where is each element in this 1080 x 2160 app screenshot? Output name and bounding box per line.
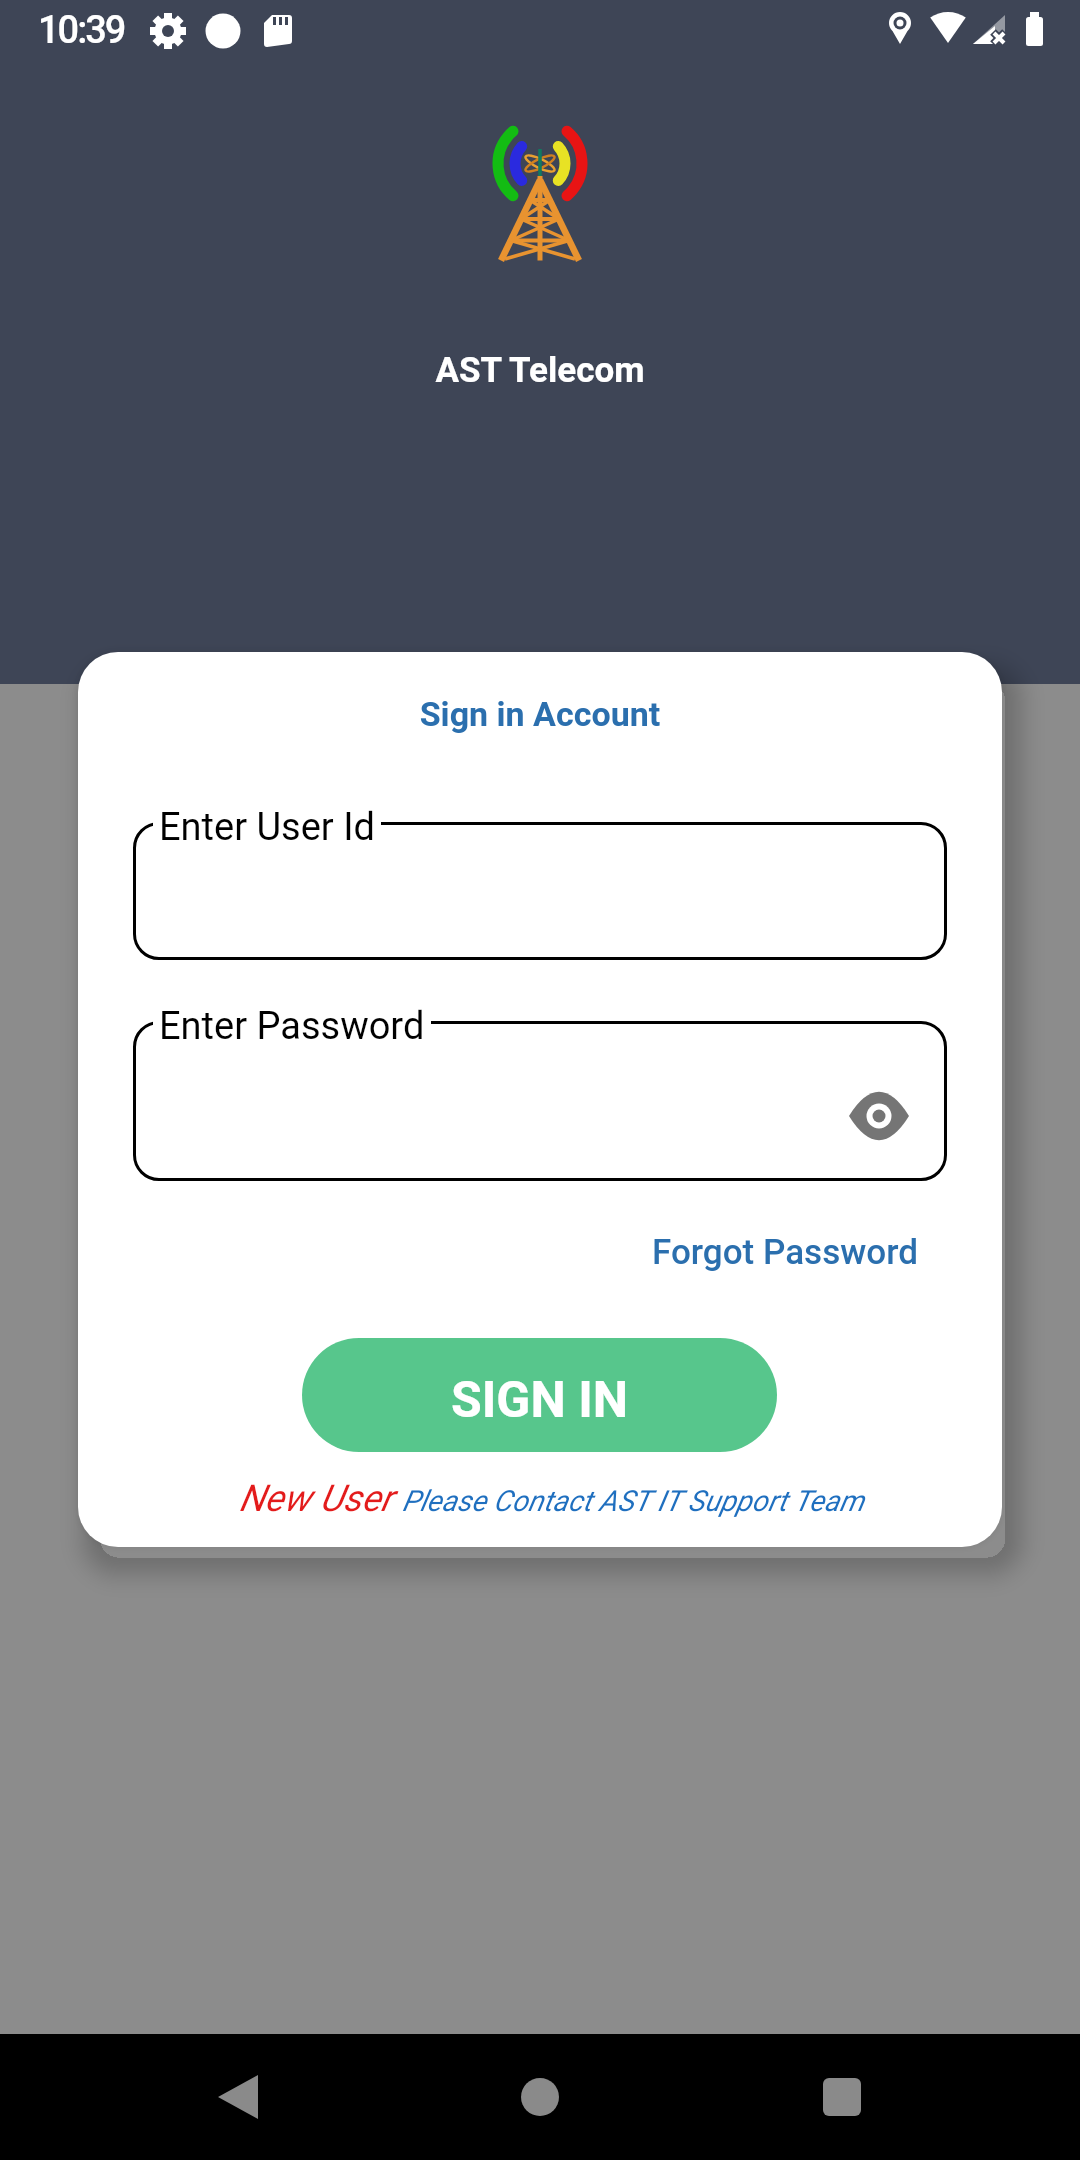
staticText: Sign in Account: [78, 694, 1002, 734]
staticText: Enter User Id: [159, 805, 375, 850]
staticText: AST Telecom: [0, 350, 1080, 391]
button[interactable]: [720, 2034, 1080, 2160]
button[interactable]: SIGN IN: [302, 1338, 777, 1452]
staticText: Enter Password: [159, 1004, 425, 1049]
button[interactable]: [0, 2034, 360, 2160]
button[interactable]: New User: [89, 1477, 1002, 1520]
staticText: New User: [239, 1477, 402, 1520]
staticText: Please Contact AST IT Support Team: [402, 1484, 864, 1518]
button[interactable]: Enter User Id: [133, 822, 947, 960]
button[interactable]: [360, 2034, 720, 2160]
button[interactable]: Forgot Password: [652, 1232, 918, 1273]
staticText: 10:39: [38, 8, 125, 53]
button[interactable]: [849, 1093, 909, 1139]
staticText: SIGN IN: [451, 1371, 629, 1430]
button[interactable]: Enter Password: [133, 1021, 947, 1181]
